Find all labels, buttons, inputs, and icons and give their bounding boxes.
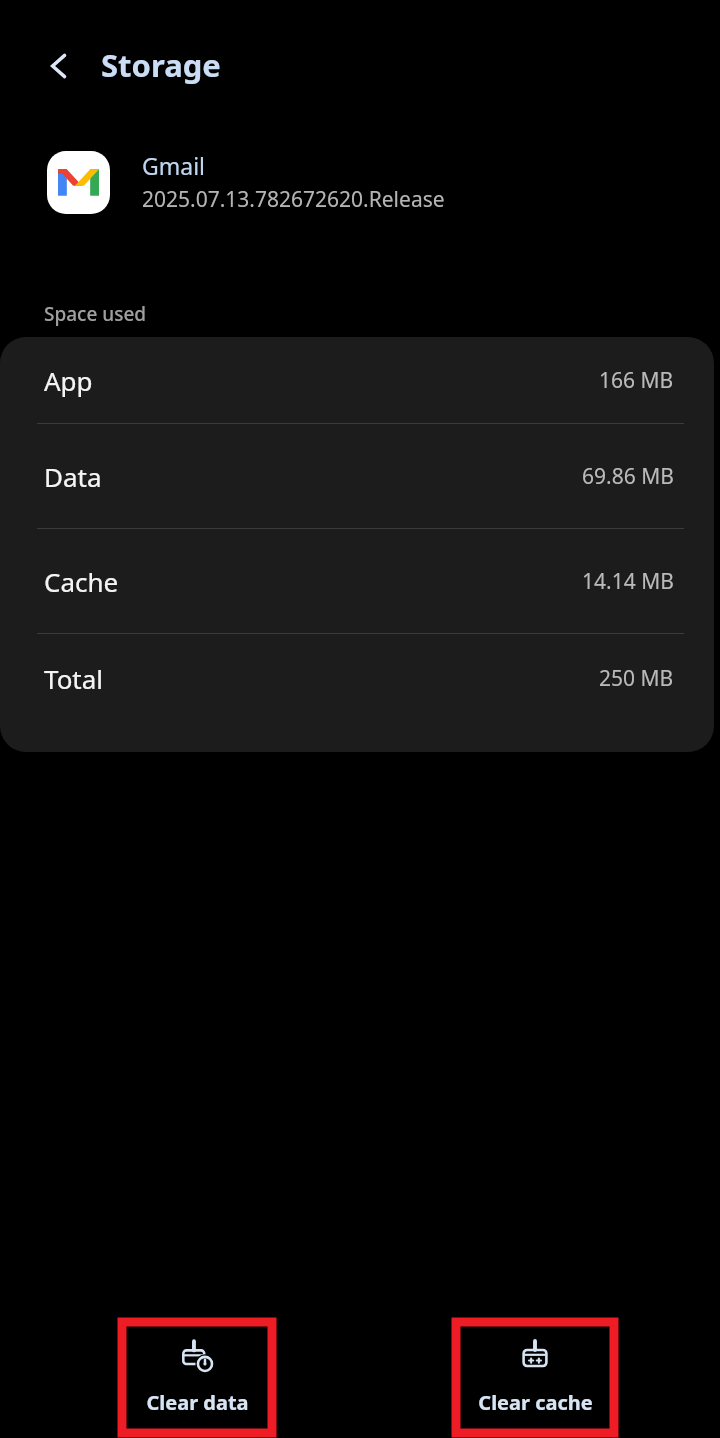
staticText: Data [44,459,102,494]
button[interactable]: Gmail [0,140,720,224]
staticText: App [44,363,93,398]
staticText: Storage [101,44,221,86]
staticText: 250 MB [599,664,674,693]
staticText: Total [44,661,104,696]
button[interactable]: Back [33,40,85,92]
staticText: 14.14 MB [582,567,674,596]
staticText: 69.86 MB [582,462,674,491]
button[interactable]: Clear cache [456,1322,614,1433]
staticText: 166 MB [599,366,674,395]
staticText: Clear data [146,1389,249,1416]
button[interactable]: Total [0,634,714,722]
button[interactable]: Data [0,424,714,528]
staticText: Clear cache [478,1389,593,1416]
staticText: 2025.07.13.782672620.Release [142,185,445,214]
staticText: Cache [44,564,119,599]
button[interactable]: Cache [0,529,714,633]
button[interactable]: Clear data [122,1322,272,1433]
staticText: Gmail [142,150,206,181]
staticText: Space used [44,301,147,327]
button[interactable]: App [0,337,714,423]
